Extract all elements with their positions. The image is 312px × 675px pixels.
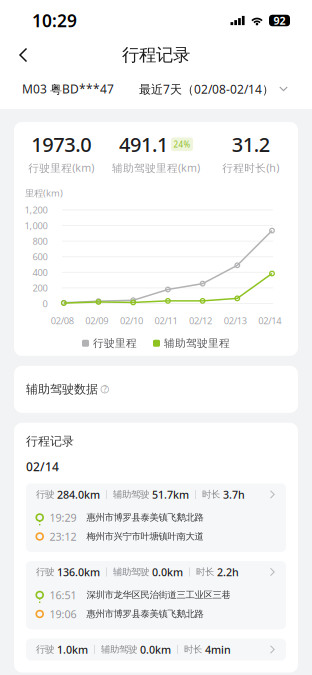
button[interactable]: 返回 [0,39,42,70]
staticText: 时长 [196,566,214,578]
staticText: 辅助驾驶数据 [26,382,98,397]
staticText: 行驶 [36,644,54,655]
button[interactable]: 行驶 [26,561,286,629]
staticText: 辅助驾驶 [101,644,137,655]
staticText: 92 [273,13,285,28]
staticText: 02/08 [51,314,74,327]
staticText: 136.0km [57,565,100,579]
staticText: 1,000 [24,219,47,232]
staticText: 行程记录 [26,434,74,448]
staticText: 4min [205,642,231,657]
staticText: 16:51 [49,588,76,602]
staticText: 800 [32,235,47,247]
button[interactable]: 行驶 [26,483,286,552]
button[interactable]: 最近7天（02/08-02/14） [139,75,288,103]
staticText: 行驶里程(km) [28,161,94,175]
staticText: 0.0km [140,642,171,657]
staticText: 284.0km [57,487,100,502]
staticText: 最近7天（02/08-02/14） [139,81,274,97]
staticText: 19:29 [49,510,76,525]
staticText: 491.1 [119,131,168,158]
staticText: 2.2h [217,565,239,579]
staticText: 1,200 [24,204,47,216]
button[interactable]: M03 粤BD***47 [22,75,114,103]
staticText: 3.7h [223,487,245,502]
staticText: 行驶里程 [93,337,137,350]
staticText: 02/11 [154,314,177,327]
staticText: 200 [32,282,47,294]
button[interactable]: 辅助驾驶数据 [14,366,298,413]
staticText: 深圳市龙华区民治街道三工业区三巷 [86,589,230,601]
staticText: 02/14 [258,314,281,327]
staticText: 23:12 [49,529,76,544]
staticText: 400 [32,266,47,278]
staticText: ? [103,384,106,395]
staticText: 10:29 [32,9,77,32]
staticText: 辅助驾驶 [113,489,149,500]
staticText: 梅州市兴宁市叶塘镇叶南大道 [86,531,203,542]
staticText: 时长 [184,644,202,655]
staticText: 02/13 [224,314,247,327]
staticText: 1.0km [57,642,88,657]
staticText: 辅助驾驶 [113,566,149,578]
staticText: 0 [42,297,47,310]
staticText: 51.7km [152,487,189,502]
staticText: 行程记录 [122,44,190,66]
staticText: 02/09 [85,314,108,327]
staticText: 行驶 [36,489,54,500]
staticText: 惠州市博罗县泰美镇飞鹅北路 [86,512,203,523]
staticText: 02/14 [26,459,59,474]
staticText: 31.2 [232,131,270,158]
staticText: 0.0km [152,565,183,579]
staticText: 辅助驾驶里程 [164,337,230,350]
staticText: 惠州市博罗县泰美镇飞鹅北路 [86,608,203,620]
staticText: M03 粤BD***47 [22,81,114,97]
staticText: 辅助驾驶里程(km) [112,161,200,175]
staticText: 19:06 [49,607,76,621]
staticText: 行驶 [36,566,54,578]
staticText: 02/12 [189,314,212,327]
staticText: 1973.0 [31,131,91,158]
staticText: 600 [32,250,47,263]
staticText: 里程(km) [25,187,63,199]
staticText: 时长 [202,489,220,500]
button[interactable]: 行驶 [26,638,286,660]
staticText: 24% [173,139,190,150]
staticText: 行程时长(h) [222,161,279,175]
staticText: 02/10 [120,314,143,327]
